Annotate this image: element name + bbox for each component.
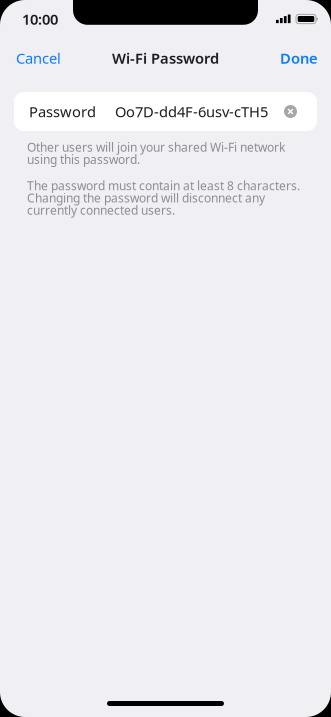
button[interactable]: Done [276, 41, 322, 75]
staticText: Done [280, 48, 318, 68]
staticText: The password must contain at least 8 cha… [27, 179, 300, 216]
staticText: Other users will join your shared Wi-Fi … [27, 141, 285, 165]
staticText: 10:00 [22, 9, 58, 29]
staticText: Wi-Fi Password [112, 48, 219, 68]
staticText: Password [29, 102, 96, 121]
staticText: Oo7D-dd4F-6usv-cTH5 [115, 102, 268, 121]
staticText: Cancel [16, 48, 61, 68]
button[interactable]: Password [14, 92, 317, 131]
button[interactable]: Cancel [12, 41, 65, 75]
